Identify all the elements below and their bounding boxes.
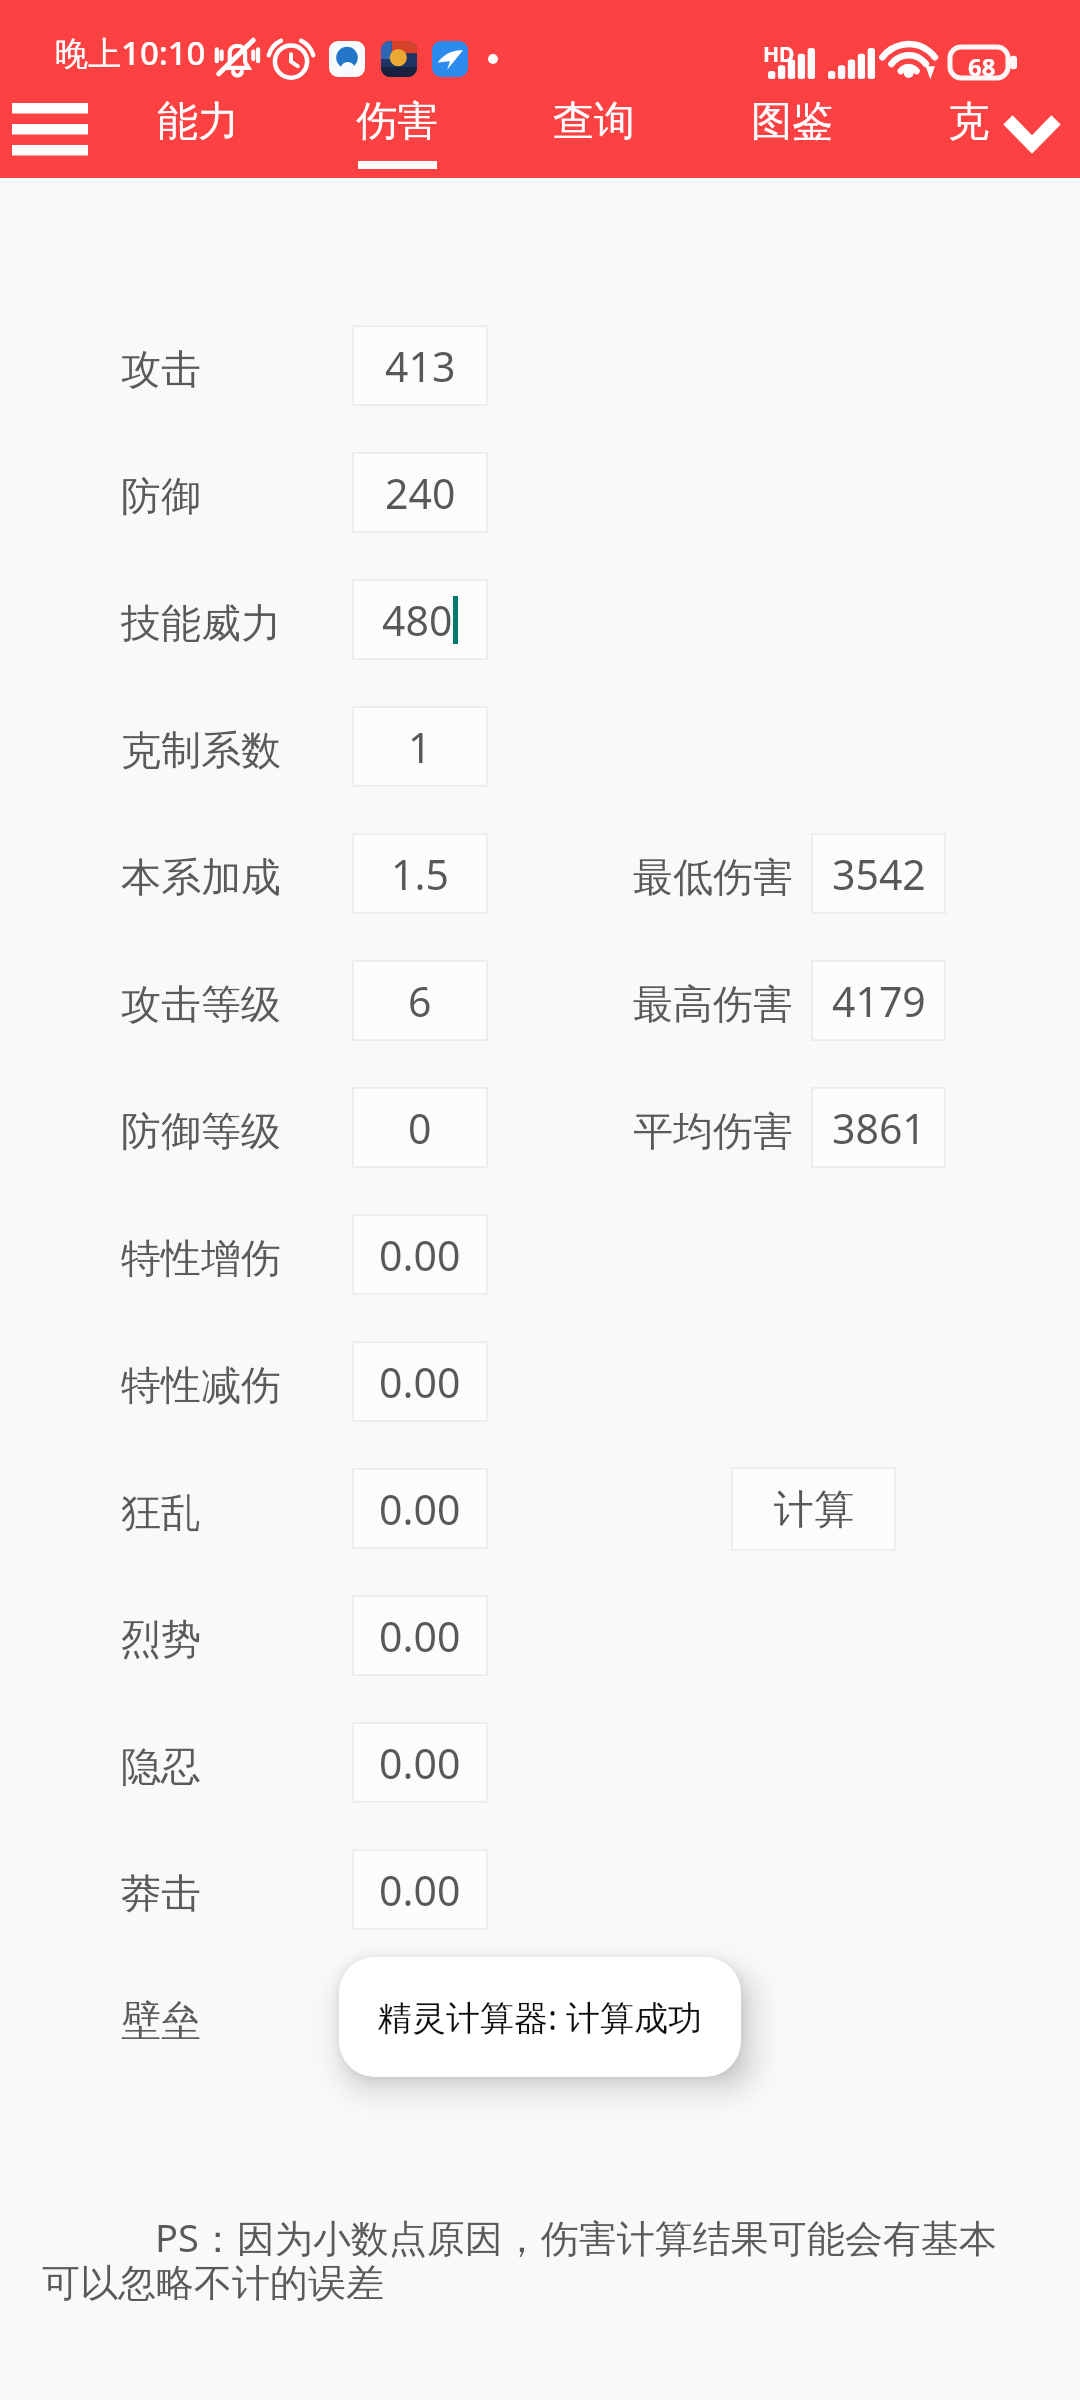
staticText: 4179: [832, 973, 926, 1029]
button[interactable]: 0: [352, 1087, 488, 1168]
button[interactable]: 6: [352, 960, 488, 1041]
staticText: 1: [408, 719, 432, 775]
button[interactable]: 4179: [811, 960, 946, 1041]
button[interactable]: 能力: [118, 85, 278, 185]
staticText: 精灵计算器: 计算成功: [378, 1994, 702, 2040]
button[interactable]: 计算: [731, 1467, 896, 1551]
staticText: 晚上10:10: [55, 30, 206, 75]
button[interactable]: 图鉴: [712, 85, 872, 185]
button[interactable]: 0.00: [352, 1722, 488, 1803]
staticText: 克制系数: [121, 725, 281, 775]
button[interactable]: 3861: [811, 1087, 946, 1168]
staticText: 68: [968, 50, 996, 83]
staticText: 6: [408, 973, 432, 1029]
button[interactable]: 1: [352, 706, 488, 787]
staticText: 0: [408, 1100, 432, 1156]
staticText: 0.00: [379, 1481, 461, 1537]
staticText: 攻击: [121, 344, 201, 394]
staticText: 防御等级: [121, 1106, 281, 1156]
staticText: 壁垒: [121, 1995, 201, 2045]
button[interactable]: 0.00: [352, 1595, 488, 1676]
button[interactable]: 精灵计算器: 计算成功: [339, 1957, 741, 2077]
staticText: HD: [763, 40, 795, 69]
button[interactable]: 0.00: [352, 1341, 488, 1422]
staticText: 莽击: [121, 1868, 201, 1918]
button[interactable]: 伤害: [317, 85, 477, 185]
staticText: 0.00: [379, 1354, 461, 1410]
staticText: PS：因为小数点原因，伤害计算结果可能会有基本: [155, 2211, 997, 2263]
staticText: 平均伤害: [633, 1106, 793, 1156]
staticText: 最高伤害: [633, 979, 793, 1029]
staticText: 图鉴: [751, 96, 833, 148]
staticText: 480: [382, 592, 453, 648]
staticText: 0.00: [379, 1735, 461, 1791]
staticText: 240: [385, 465, 456, 521]
button[interactable]: 0.00: [352, 1468, 488, 1549]
staticText: 1.5: [391, 846, 449, 902]
button[interactable]: 3542: [811, 833, 946, 914]
button[interactable]: 1.5: [352, 833, 488, 914]
staticText: 413: [385, 338, 456, 394]
staticText: 伤害: [356, 96, 438, 148]
staticText: 0.00: [379, 1862, 461, 1918]
staticText: 3542: [832, 846, 926, 902]
button[interactable]: 480: [352, 579, 488, 660]
button[interactable]: 查询: [514, 85, 674, 185]
staticText: 特性增伤: [121, 1233, 281, 1283]
staticText: 隐忍: [121, 1741, 201, 1791]
staticText: 防御: [121, 471, 201, 521]
staticText: 0.00: [379, 1608, 461, 1664]
button[interactable]: 0.00: [352, 1849, 488, 1930]
button[interactable]: 413: [352, 325, 488, 406]
staticText: 能力: [157, 96, 239, 148]
staticText: 烈势: [121, 1614, 201, 1664]
staticText: 计算: [774, 1484, 854, 1534]
button[interactable]: Menu: [0, 85, 100, 185]
staticText: 特性减伤: [121, 1360, 281, 1410]
staticText: 本系加成: [121, 852, 281, 902]
staticText: 克: [948, 96, 989, 148]
staticText: 可以忽略不计的误差: [42, 2259, 384, 2307]
staticText: 狂乱: [121, 1487, 201, 1537]
button[interactable]: 240: [352, 452, 488, 533]
button[interactable]: Expand: [990, 85, 1070, 185]
staticText: 技能威力: [121, 598, 281, 648]
staticText: 查询: [553, 96, 635, 148]
staticText: 攻击等级: [121, 979, 281, 1029]
staticText: 3861: [832, 1100, 926, 1156]
button[interactable]: 克: [888, 85, 1048, 185]
staticText: 0.00: [379, 1227, 461, 1283]
staticText: 最低伤害: [633, 852, 793, 902]
button[interactable]: 0.00: [352, 1214, 488, 1295]
